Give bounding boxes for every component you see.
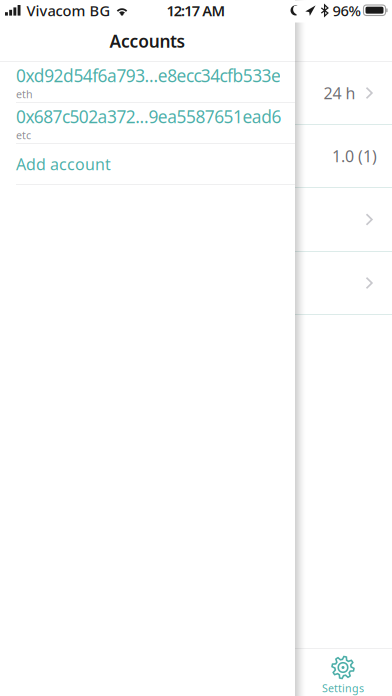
staticText: 1.0 (1) xyxy=(332,145,377,167)
staticText: 96% xyxy=(332,1,360,20)
button[interactable] xyxy=(0,252,392,315)
button[interactable]: 0xd92d54f6a793...e8ecc34cfb533e xyxy=(0,62,295,103)
staticText: etc xyxy=(16,128,31,142)
button[interactable] xyxy=(0,188,392,252)
staticText: Settings xyxy=(322,681,364,695)
staticText: 24 h xyxy=(323,82,355,104)
staticText: Add account xyxy=(16,153,111,175)
staticText: 0xd92d54f6a793...e8ecc34cfb533e xyxy=(16,64,281,87)
button[interactable]: 0x687c502a372...9ea5587651ead6 xyxy=(0,103,295,144)
staticText: 0x687c502a372...9ea5587651ead6 xyxy=(16,105,282,128)
staticText: eth xyxy=(16,87,33,101)
button[interactable]: 1.0 (1) xyxy=(0,125,392,188)
staticText: 12:17 AM xyxy=(166,1,226,20)
button[interactable]: Add account xyxy=(0,144,295,185)
button[interactable]: 24 h xyxy=(0,62,392,125)
staticText: Accounts xyxy=(109,29,186,52)
staticText: Vivacom BG xyxy=(26,1,110,20)
button[interactable]: Settings xyxy=(294,649,392,696)
